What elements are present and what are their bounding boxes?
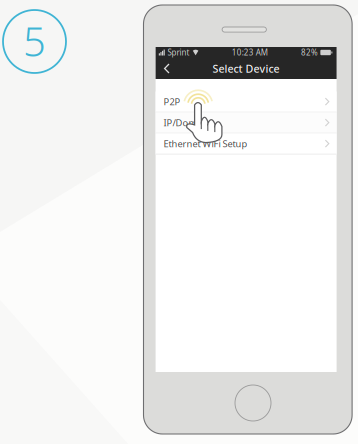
staticText: Select Device — [213, 61, 280, 76]
button[interactable]: Back — [156, 58, 190, 79]
staticText: P2P — [164, 95, 181, 108]
button[interactable]: IP/Domain — [156, 112, 337, 133]
button[interactable]: P2P — [156, 91, 337, 112]
staticText: Sprint — [168, 47, 190, 58]
staticText: 82% — [301, 47, 318, 58]
button[interactable]: Ethernet WiFi Setup — [156, 133, 337, 154]
staticText: IP/Domain — [164, 116, 211, 129]
staticText: 10:23 AM — [232, 47, 268, 58]
staticText: Ethernet WiFi Setup — [164, 137, 248, 150]
staticText: 5 — [23, 14, 46, 67]
